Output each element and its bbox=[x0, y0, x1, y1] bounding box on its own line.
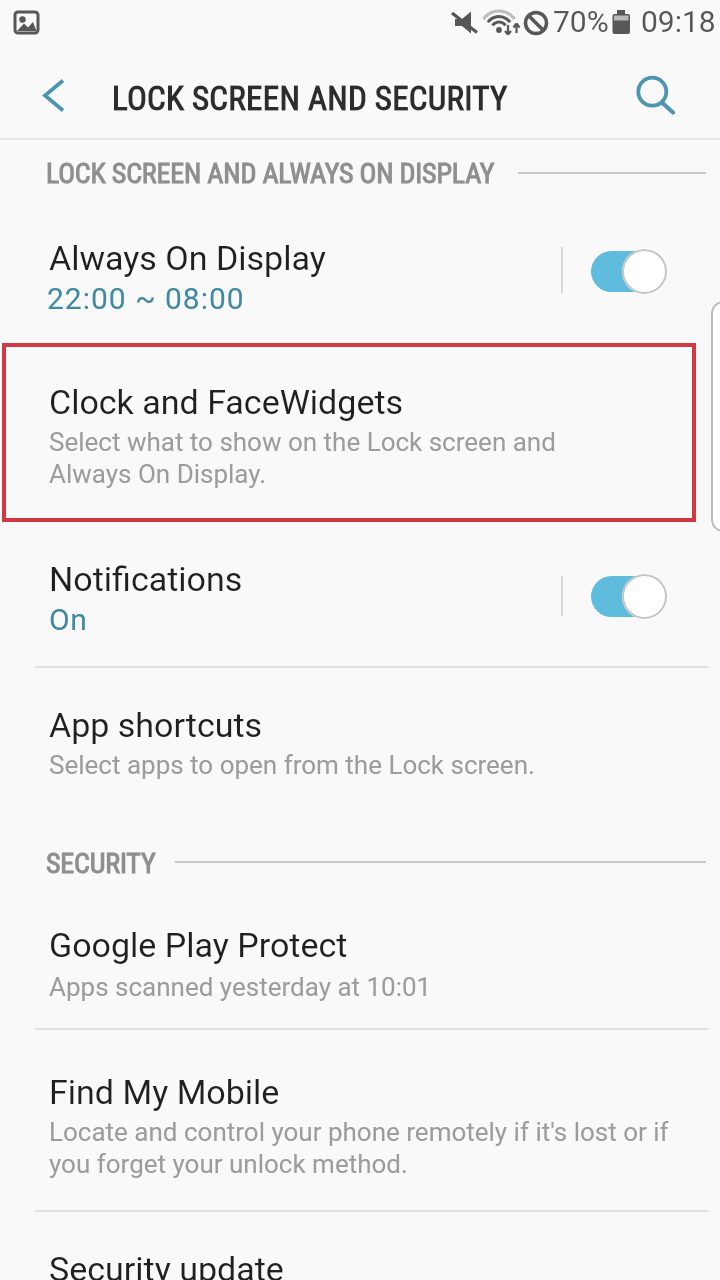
staticText: Apps scanned yesterday at 10:01 bbox=[49, 972, 432, 1002]
staticText: Clock and FaceWidgets bbox=[49, 382, 404, 422]
staticText: Always On Display bbox=[49, 238, 326, 278]
button[interactable]: Clock and FaceWidgets bbox=[2, 343, 696, 522]
button[interactable]: App shortcuts bbox=[0, 692, 720, 802]
staticText: 22:00 ~ 08:00 bbox=[47, 281, 245, 316]
staticText: 70% bbox=[553, 4, 609, 39]
staticText: Google Play Protect bbox=[49, 925, 348, 965]
staticText: On bbox=[49, 602, 88, 637]
button[interactable] bbox=[591, 576, 667, 617]
staticText: App shortcuts bbox=[49, 705, 263, 745]
staticText: LOCK SCREEN AND ALWAYS ON DISPLAY bbox=[46, 157, 495, 190]
staticText: Select apps to open from the Lock screen… bbox=[49, 750, 535, 780]
button[interactable]: Notifications bbox=[0, 551, 720, 661]
button[interactable]: Google Play Protect bbox=[0, 916, 720, 1016]
staticText: LOCK SCREEN AND SECURITY bbox=[112, 79, 508, 118]
button[interactable] bbox=[20, 70, 80, 125]
button[interactable] bbox=[626, 66, 686, 124]
staticText: Find My Mobile bbox=[49, 1072, 280, 1112]
staticText: Locate and control your phone remotely i… bbox=[49, 1117, 669, 1180]
staticText: Select what to show on the Lock screen a… bbox=[49, 427, 556, 489]
button[interactable]: Security update bbox=[0, 1236, 720, 1280]
staticText: SECURITY bbox=[46, 847, 156, 880]
staticText: 09:18 bbox=[641, 4, 716, 39]
button[interactable]: Find My Mobile bbox=[0, 1063, 720, 1198]
button[interactable] bbox=[591, 251, 667, 292]
staticText: Security update bbox=[49, 1249, 284, 1280]
button[interactable]: Always On Display bbox=[0, 222, 720, 334]
staticText: Notifications bbox=[49, 559, 243, 599]
